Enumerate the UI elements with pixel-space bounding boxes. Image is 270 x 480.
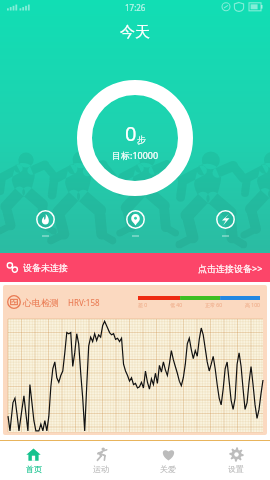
staticText: 17:26 (125, 2, 146, 13)
staticText: 心电检测 (23, 297, 59, 308)
staticText: 运动 (93, 464, 109, 474)
button[interactable]: 设备未连接 (0, 253, 270, 282)
button[interactable]: 运动 (67, 441, 134, 480)
staticText: 步 (137, 134, 146, 145)
button[interactable]: 首页 (0, 441, 67, 480)
staticText: 今天 (0, 23, 270, 42)
staticText: 差 0 (138, 302, 148, 309)
staticText: 目标:10000 (112, 149, 159, 161)
button[interactable]: 设置 (202, 441, 270, 480)
staticText: 正常 60 (205, 302, 223, 309)
staticText: 首页 (26, 464, 42, 474)
staticText: 设置 (228, 464, 244, 474)
staticText: 0 (125, 120, 137, 147)
button[interactable]: 活力 (180, 210, 270, 238)
button[interactable]: 心电检测 (3, 285, 267, 435)
staticText: 高 100 (245, 302, 260, 309)
button[interactable]: 关爱 (134, 441, 202, 480)
staticText: 设备未连接 (23, 262, 68, 273)
staticText: HRV:158 (68, 297, 100, 308)
button[interactable]: 距离 (90, 210, 180, 238)
staticText: 关爱 (160, 464, 176, 474)
button[interactable]: 卡路里 (0, 210, 90, 238)
staticText: 低 40 (170, 302, 183, 309)
staticText: 点击连接设备>> (198, 262, 263, 274)
